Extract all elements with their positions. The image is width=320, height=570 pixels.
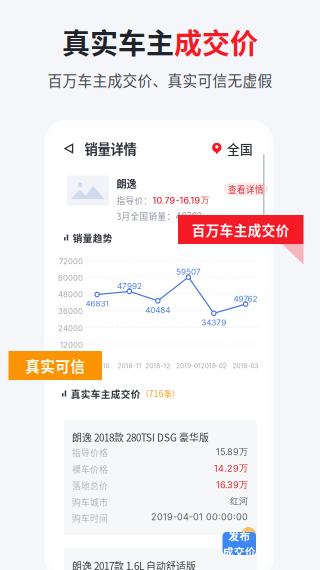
staticText: 40484: [145, 305, 170, 315]
staticText: 红河: [230, 495, 248, 507]
staticText: （716条）: [141, 387, 180, 399]
staticText: 48000: [58, 290, 83, 299]
staticText: 发布: [228, 528, 250, 543]
staticText: 2019-03: [233, 362, 259, 370]
button[interactable]: 销量详情: [64, 139, 137, 158]
staticText: 朗逸: [116, 176, 136, 191]
staticText: 15.89万: [216, 446, 248, 457]
staticText: 查看详情: [228, 183, 264, 195]
button[interactable]: 朗逸 2017款 1.6L 自动舒适版: [64, 548, 257, 570]
staticText: 百万车主成交价: [192, 220, 290, 239]
staticText: 2018-10: [85, 362, 110, 370]
button[interactable]: 朗逸 2018款 280TSI DSG 豪华版: [64, 419, 257, 535]
staticText: 真实可信: [25, 355, 85, 376]
button[interactable]: 查看详情: [224, 183, 268, 195]
staticText: 2019-04-01 00:00:00: [151, 511, 248, 522]
staticText: 59507: [176, 267, 201, 277]
staticText: 2018-12: [145, 362, 170, 370]
staticText: 2019-01: [176, 362, 201, 370]
staticText: 真实车主成交价: [71, 386, 141, 400]
staticText: 指导价格: [72, 446, 108, 459]
button[interactable]: 全国: [212, 139, 253, 158]
button[interactable]: 发布: [222, 527, 262, 555]
staticText: 36000: [58, 307, 83, 316]
staticText: 2019-02: [201, 362, 227, 370]
staticText: 14.29万: [214, 462, 248, 474]
staticText: 24000: [58, 324, 83, 333]
staticText: 成交价: [223, 544, 256, 559]
staticText: 裸车价格: [72, 462, 108, 475]
staticText: 47992: [117, 281, 142, 291]
staticText: 指导价：: [116, 194, 152, 206]
staticText: 34379: [201, 317, 226, 327]
staticText: 购车城市: [72, 495, 108, 508]
staticText: 49762: [175, 211, 201, 221]
staticText: 真实车主: [62, 22, 174, 62]
staticText: 72000: [59, 257, 83, 266]
staticText: 16.39万: [216, 479, 248, 490]
staticText: 购车时间: [72, 511, 108, 524]
staticText: 百万车主成交价、真实可信无虚假: [47, 69, 272, 90]
staticText: 60000: [58, 273, 83, 283]
staticText: 49762: [234, 294, 258, 304]
staticText: 46831: [86, 299, 109, 308]
staticText: 朗逸 2017款 1.6L 自动舒适版: [72, 558, 196, 570]
staticText: 朗逸 2018款 280TSI DSG 豪华版: [72, 430, 209, 444]
staticText: 12000: [60, 340, 83, 350]
staticText: 3月全国销量：: [116, 210, 175, 222]
staticText: 10.79-16.19万: [152, 195, 209, 206]
staticText: 全国: [227, 139, 253, 158]
staticText: 销量趋势: [73, 230, 113, 244]
staticText: 销量详情: [85, 139, 137, 158]
staticText: 成交价: [174, 22, 258, 62]
staticText: 落地总价: [72, 479, 108, 492]
staticText: 2018-11: [117, 362, 141, 370]
